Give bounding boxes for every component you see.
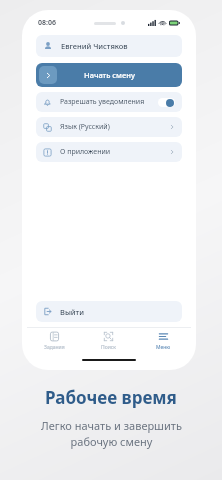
staticText: О приложении bbox=[60, 147, 111, 157]
staticText: Легко начать и завершить рабочую смену bbox=[41, 418, 182, 449]
staticText: 08:06 bbox=[38, 18, 56, 28]
staticText: Начать смену bbox=[84, 70, 135, 80]
staticText: Рабочее время bbox=[45, 386, 177, 409]
staticText: Выйти bbox=[60, 307, 84, 317]
staticText: Язык (Русский) bbox=[60, 122, 110, 132]
staticText: Разрешать уведомления bbox=[60, 97, 145, 107]
button[interactable]: Начать смену bbox=[36, 63, 182, 87]
button[interactable]: Выйти bbox=[36, 301, 182, 322]
button[interactable]: О приложении bbox=[36, 142, 182, 162]
button[interactable]: Toggle notifications bbox=[158, 98, 175, 107]
button[interactable]: Язык (Русский) bbox=[36, 117, 182, 137]
staticText: Поиск bbox=[101, 344, 116, 351]
staticText: Задания bbox=[44, 344, 65, 351]
button[interactable]: Задания bbox=[27, 328, 81, 354]
staticText: Меню bbox=[156, 344, 171, 351]
button[interactable]: Разрешать уведомления bbox=[36, 92, 182, 112]
button[interactable]: Поиск bbox=[81, 328, 136, 354]
button[interactable]: Меню bbox=[136, 328, 191, 354]
staticText: Евгений Чистяков bbox=[61, 41, 128, 51]
button[interactable]: Евгений Чистяков bbox=[36, 35, 182, 57]
